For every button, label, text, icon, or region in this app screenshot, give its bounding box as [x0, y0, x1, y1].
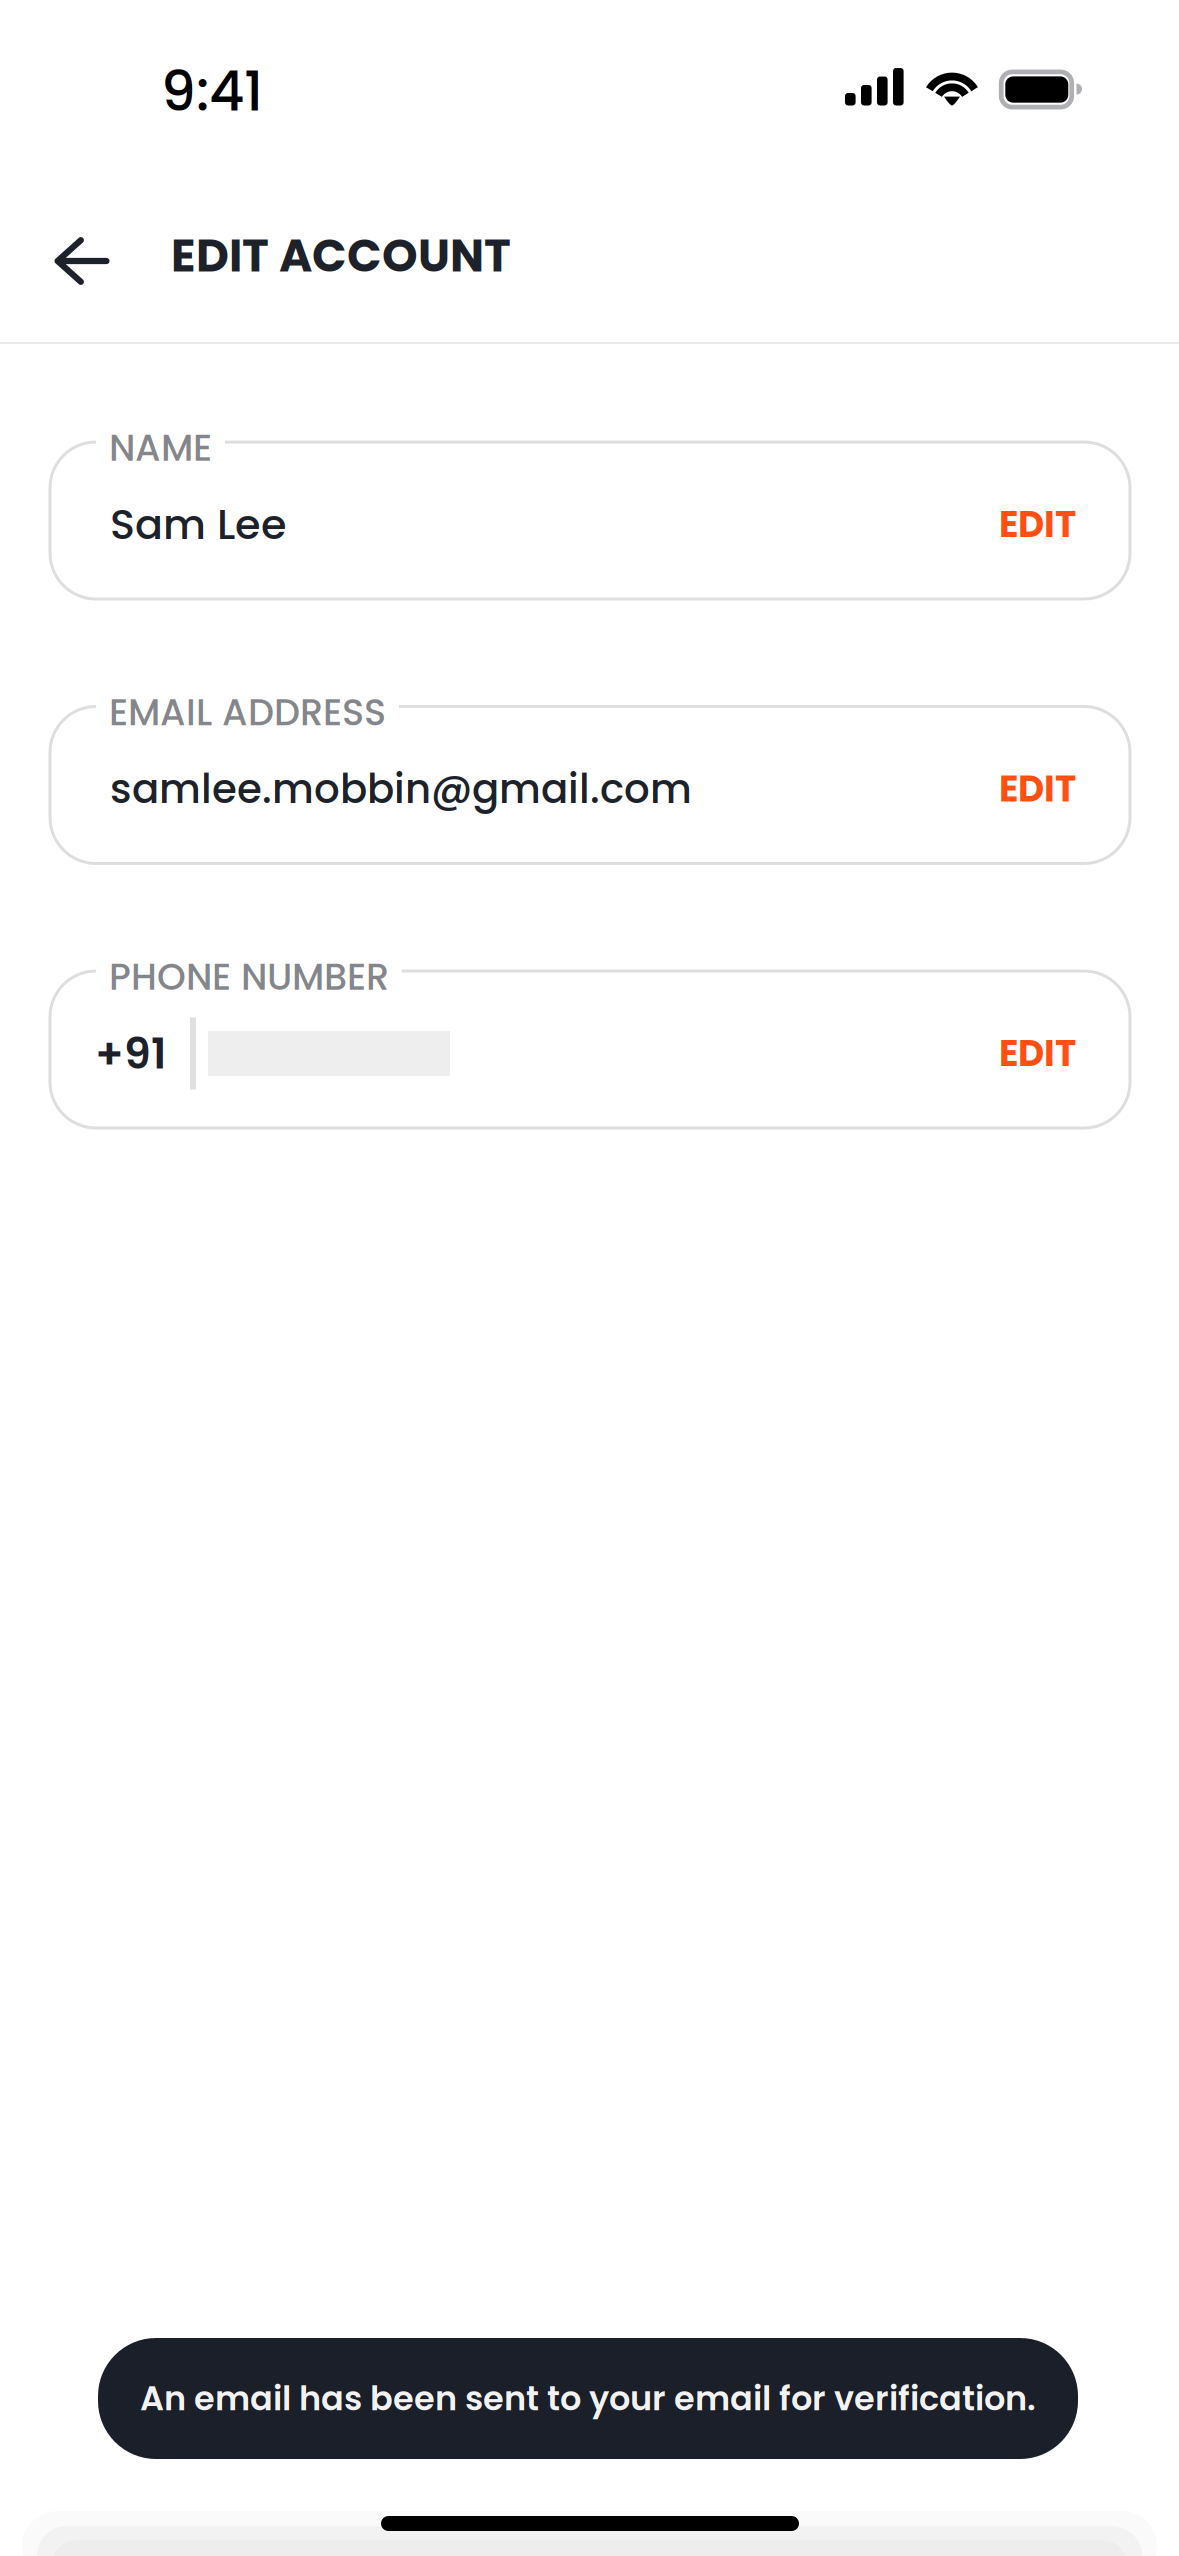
staticText: EMAIL ADDRESS: [109, 687, 386, 738]
staticText: NAME: [109, 422, 212, 474]
staticText: PHONE NUMBER: [109, 951, 389, 1003]
staticText: 9:41: [161, 53, 263, 129]
staticText: An email has been sent to your email for…: [140, 2375, 1036, 2422]
button[interactable]: EDIT: [926, 446, 1076, 603]
button[interactable]: EDIT: [926, 710, 1076, 867]
staticText: EDIT ACCOUNT: [171, 224, 511, 287]
staticText: samlee.mobbin@gmail.com: [110, 761, 692, 817]
button[interactable]: EDIT: [926, 975, 1076, 1132]
staticText: +91: [95, 1024, 166, 1083]
staticText: EDIT: [999, 764, 1076, 814]
staticText: EDIT: [999, 499, 1076, 550]
staticText: Sam Lee: [110, 496, 287, 553]
staticText: EDIT: [999, 1028, 1076, 1079]
button[interactable]: Back: [25, 204, 139, 318]
